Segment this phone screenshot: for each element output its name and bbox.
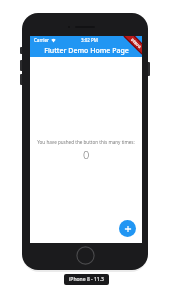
button[interactable]: Home (76, 246, 95, 265)
staticText: iPhone 8 - 11.3 (69, 276, 104, 283)
button[interactable]: Increment (119, 220, 136, 237)
staticText: Flutter Demo Home Page (44, 46, 129, 56)
staticText: 3:02 PM (81, 37, 98, 43)
staticText: Carrier (34, 37, 49, 43)
staticText: You have pushed the button this many tim… (37, 139, 135, 145)
staticText: DEBUG (130, 37, 143, 50)
staticText: 0 (83, 147, 90, 162)
